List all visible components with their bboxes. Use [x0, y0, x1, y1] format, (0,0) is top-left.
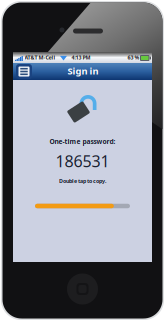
- staticText: 4:13 PM: [71, 54, 90, 61]
- staticText: One-time password:: [49, 137, 115, 146]
- staticText: Sign in: [67, 65, 98, 77]
- staticText: Double tap to copy.: [59, 177, 106, 185]
- staticText: 186531: [55, 150, 109, 172]
- staticText: 63 %: [127, 54, 139, 61]
- button[interactable]: 186531: [55, 150, 109, 172]
- staticText: AT&T M-Cell: [24, 54, 55, 61]
- button[interactable]: Menu: [16, 64, 32, 79]
